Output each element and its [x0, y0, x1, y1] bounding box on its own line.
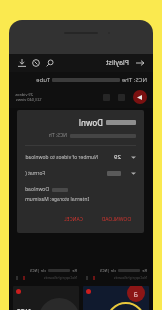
button[interactable]: Search [43, 56, 57, 70]
staticText: DOWNLOAD [101, 216, 131, 223]
staticText: 123,040 views [15, 97, 42, 102]
staticText: Format ( [25, 170, 45, 177]
staticText: 29 [114, 153, 121, 161]
staticText: NCS: Th [48, 132, 67, 139]
button[interactable]: Account [83, 286, 149, 310]
staticText: cle |NCS [29, 268, 46, 273]
staticText: a [133, 288, 138, 299]
button[interactable]: Play [133, 90, 147, 104]
staticText: Downl [78, 117, 103, 128]
staticText: NoCopyrightSounds [43, 275, 77, 280]
staticText: Re [72, 268, 77, 273]
button[interactable]: NCS [13, 286, 79, 310]
button[interactable]: Re [13, 266, 79, 282]
button[interactable]: Back [133, 56, 147, 70]
staticText: NCS: The [120, 76, 147, 84]
button[interactable]: DOWNLOAD [96, 213, 136, 226]
button[interactable]: Download [15, 56, 29, 70]
button[interactable]: 29 [25, 153, 136, 161]
button[interactable]: Account [127, 286, 145, 302]
staticText: NCS [16, 307, 31, 310]
staticText: NoCopyrightSounds [113, 275, 147, 280]
staticText: Re [142, 268, 147, 273]
staticText: Tube [36, 76, 50, 84]
staticText: Internal storage: Maximum [25, 196, 136, 203]
staticText: CANCEL [64, 216, 83, 223]
button[interactable]: Playlist [103, 58, 131, 68]
staticText: cle |NCS [99, 268, 116, 273]
staticText: 29 videos [15, 92, 33, 97]
staticText: Number of videos to download [25, 154, 98, 161]
button[interactable]: Cast [29, 56, 43, 70]
staticText: Download [25, 186, 49, 193]
button[interactable]: Format ( [25, 170, 136, 177]
button[interactable]: Re [83, 266, 149, 282]
staticText: Playlist [105, 58, 129, 68]
button[interactable]: CANCEL [59, 213, 88, 226]
